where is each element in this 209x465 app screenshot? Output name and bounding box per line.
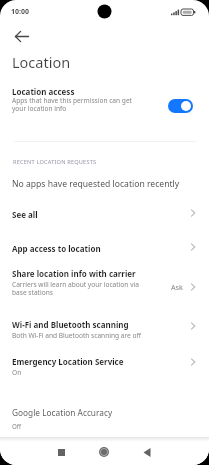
staticText: Emergency Location Service [12, 356, 124, 367]
staticText: Carriers will learn about your location … [12, 280, 139, 297]
staticText: Off [12, 422, 22, 430]
button[interactable] [12, 28, 32, 46]
staticText: See all [12, 209, 38, 220]
staticText: App access to location [12, 243, 101, 254]
staticText: Both Wi-Fi and Bluetooth scanning are of… [12, 331, 142, 340]
staticText: No apps have requested location recently [12, 178, 180, 190]
staticText: RECENT LOCATION REQUESTS [13, 158, 97, 166]
button[interactable] [94, 442, 114, 462]
staticText: 10:00 [11, 7, 29, 17]
staticText: Location [12, 52, 71, 72]
button[interactable]: Share location info with carrier [0, 266, 209, 306]
button[interactable]: App access to location [0, 237, 209, 261]
button[interactable] [51, 442, 71, 462]
staticText: On [12, 368, 22, 377]
staticText: Google Location Accuracy [12, 407, 113, 418]
button[interactable]: Wi-Fi and Bluetooth scanning [0, 316, 209, 346]
staticText: Apps that have this permission can get y… [12, 96, 132, 113]
staticText: Share location info with carrier [12, 268, 136, 279]
button[interactable]: Location access [0, 80, 209, 122]
button[interactable]: Google Location Accuracy [0, 405, 209, 435]
staticText: Location access [12, 86, 75, 97]
button[interactable]: Emergency Location Service [0, 353, 209, 383]
staticText: Wi-Fi and Bluetooth scanning [12, 319, 129, 330]
staticText: Ask [171, 282, 183, 292]
button[interactable] [137, 442, 157, 462]
button[interactable]: See all [0, 203, 209, 227]
